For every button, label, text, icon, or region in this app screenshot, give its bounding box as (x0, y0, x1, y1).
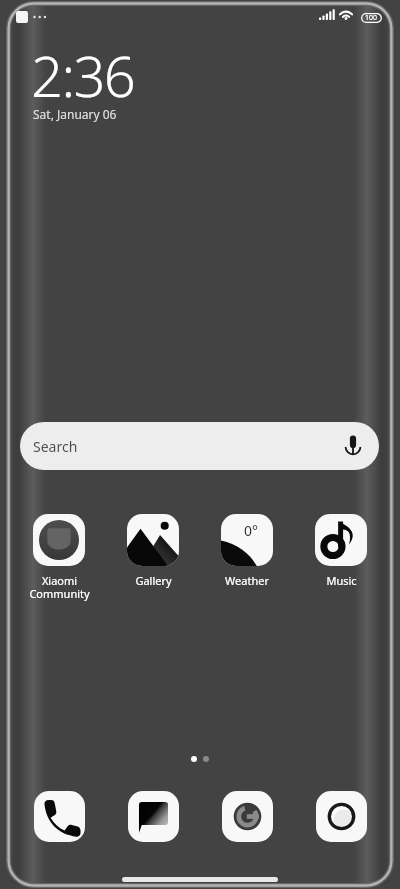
button[interactable]: Xiaomi Community (12, 514, 106, 601)
staticText: Gallery (135, 573, 172, 588)
button[interactable]: Phone (34, 791, 85, 842)
staticText: 100 (365, 13, 378, 23)
button[interactable]: Camera (316, 791, 367, 842)
staticText: Weather (225, 573, 269, 588)
staticText: Music (326, 573, 357, 588)
staticText: Search (33, 437, 78, 456)
button[interactable]: Gallery (106, 514, 200, 588)
button[interactable]: Messages (128, 791, 179, 842)
button[interactable]: 0° (200, 514, 294, 588)
staticText: 2:36 (31, 37, 135, 113)
button[interactable]: Search (20, 422, 379, 470)
button[interactable]: Google (222, 791, 273, 842)
staticText: Sat, January 06 (33, 106, 117, 122)
other: Voice search (345, 435, 361, 457)
staticText: 0° (244, 521, 258, 540)
button[interactable]: Music (294, 514, 388, 588)
staticText: Xiaomi Community (29, 573, 90, 601)
